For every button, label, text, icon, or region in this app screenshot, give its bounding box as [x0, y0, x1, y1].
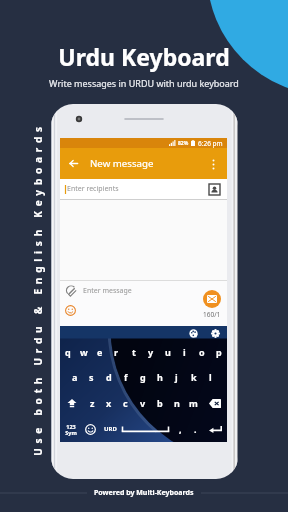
button[interactable]: Shift: [60, 390, 84, 416]
staticText: Write messages in URDU with urdu keyboar…: [49, 77, 239, 89]
staticText: e: [97, 346, 103, 358]
staticText: .: [194, 423, 197, 435]
staticText: g: [140, 371, 146, 383]
staticText: r: [114, 346, 119, 358]
staticText: m: [189, 397, 198, 409]
button[interactable]: e: [92, 339, 108, 364]
staticText: Use both Urdu & English Keyboards: [31, 119, 45, 459]
staticText: x: [106, 397, 112, 409]
button[interactable]: Backspace: [202, 390, 227, 416]
staticText: u: [165, 346, 171, 358]
staticText: URD: [104, 425, 117, 433]
staticText: f: [124, 371, 128, 383]
button[interactable]: Attach: [65, 285, 77, 297]
button[interactable]: Settings: [209, 327, 221, 339]
button[interactable]: r: [108, 339, 125, 364]
button[interactable]: x: [100, 390, 117, 416]
staticText: Enter recipients: [67, 184, 119, 194]
button[interactable]: j: [168, 364, 185, 390]
button[interactable]: Send message: [203, 290, 221, 308]
button[interactable]: Enter recipients: [60, 179, 227, 199]
button[interactable]: y: [142, 339, 159, 364]
button[interactable]: g: [134, 364, 151, 390]
button[interactable]: Emoji keyboard: [82, 424, 99, 435]
button[interactable]: o: [193, 339, 210, 364]
button[interactable]: .: [188, 423, 203, 435]
button[interactable]: w: [76, 339, 92, 364]
staticText: o: [199, 346, 205, 358]
staticText: c: [123, 397, 128, 409]
button[interactable]: b: [151, 390, 168, 416]
staticText: j: [175, 371, 178, 383]
staticText: 123 Sym: [65, 423, 77, 436]
button[interactable]: q: [60, 339, 76, 364]
button[interactable]: d: [100, 364, 117, 390]
button[interactable]: Space: [121, 423, 170, 435]
staticText: Powered by Multi-Keyboards: [94, 488, 194, 498]
button[interactable]: z: [84, 390, 100, 416]
staticText: y: [148, 346, 154, 358]
staticText: b: [157, 397, 163, 409]
staticText: t: [132, 346, 136, 358]
staticText: z: [90, 397, 95, 409]
staticText: s: [89, 371, 94, 383]
button[interactable]: 123 Sym: [60, 423, 82, 436]
button[interactable]: m: [185, 390, 202, 416]
button[interactable]: i: [176, 339, 193, 364]
staticText: p: [216, 346, 222, 358]
button[interactable]: Emoji: [65, 305, 76, 316]
button[interactable]: k: [185, 364, 202, 390]
button[interactable]: v: [134, 390, 151, 416]
staticText: w: [80, 346, 88, 358]
staticText: h: [157, 371, 163, 383]
button[interactable]: URD: [99, 425, 121, 433]
staticText: v: [140, 397, 146, 409]
staticText: n: [174, 397, 180, 409]
button[interactable]: Back: [65, 155, 82, 172]
staticText: 6:26 pm: [198, 139, 223, 148]
button[interactable]: u: [159, 339, 176, 364]
staticText: q: [65, 346, 71, 358]
button[interactable]: Enter: [203, 425, 227, 434]
staticText: ,: [179, 423, 182, 435]
button[interactable]: More options: [204, 155, 222, 173]
button[interactable]: ,: [173, 423, 188, 435]
button[interactable]: s: [83, 364, 100, 390]
staticText: 82%: [178, 140, 189, 147]
button[interactable]: Themes: [187, 327, 199, 339]
button[interactable]: t: [125, 339, 142, 364]
button[interactable]: f: [117, 364, 134, 390]
button[interactable]: Back: [60, 148, 227, 179]
staticText: a: [72, 371, 78, 383]
button[interactable]: a: [67, 364, 83, 390]
staticText: d: [106, 371, 112, 383]
staticText: k: [191, 371, 197, 383]
staticText: i: [183, 346, 186, 358]
staticText: 160/1: [203, 310, 221, 319]
button[interactable]: c: [117, 390, 134, 416]
button[interactable]: Contacts: [209, 184, 220, 195]
staticText: New message: [90, 157, 154, 170]
staticText: Enter message: [83, 286, 132, 296]
button[interactable]: p: [210, 339, 227, 364]
button[interactable]: n: [168, 390, 185, 416]
button[interactable]: h: [151, 364, 168, 390]
staticText: Urdu Keyboard: [58, 41, 230, 72]
staticText: l: [209, 371, 212, 383]
button[interactable]: l: [202, 364, 219, 390]
